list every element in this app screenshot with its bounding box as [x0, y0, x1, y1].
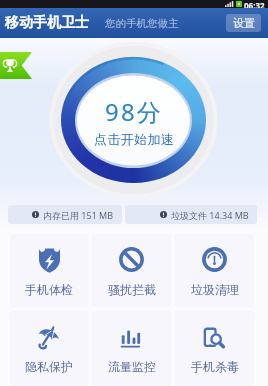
- button[interactable]: 内存已用 151 MB: [8, 205, 122, 224]
- staticText: 您的手机您做主: [105, 17, 179, 30]
- staticText: 垃圾清理: [191, 282, 239, 297]
- staticText: 98分: [105, 95, 164, 128]
- button[interactable]: [0, 52, 32, 79]
- button[interactable]: 设置: [226, 14, 261, 32]
- staticText: 内存已用 151 MB: [43, 209, 114, 221]
- button[interactable]: 流量监控: [92, 311, 171, 386]
- staticText: 移动手机卫士: [5, 14, 89, 32]
- staticText: 设置: [233, 16, 255, 30]
- staticText: 点击开始加速: [94, 131, 175, 147]
- staticText: 垃圾文件 14.34 MB: [171, 209, 249, 221]
- staticText: 06:32: [244, 0, 265, 8]
- button[interactable]: 手机体检: [10, 234, 88, 307]
- staticText: 骚扰拦截: [108, 282, 156, 297]
- staticText: 流量监控: [108, 359, 156, 374]
- button[interactable]: 骚扰拦截: [92, 234, 171, 307]
- button[interactable]: 手机杀毒: [175, 311, 254, 386]
- staticText: 手机杀毒: [191, 359, 239, 374]
- button[interactable]: 垃圾文件 14.34 MB: [125, 205, 257, 224]
- staticText: 手机体检: [25, 282, 73, 297]
- button[interactable]: 垃圾清理: [175, 234, 254, 307]
- staticText: 隐私保护: [25, 359, 73, 374]
- button[interactable]: 隐私保护: [10, 311, 88, 386]
